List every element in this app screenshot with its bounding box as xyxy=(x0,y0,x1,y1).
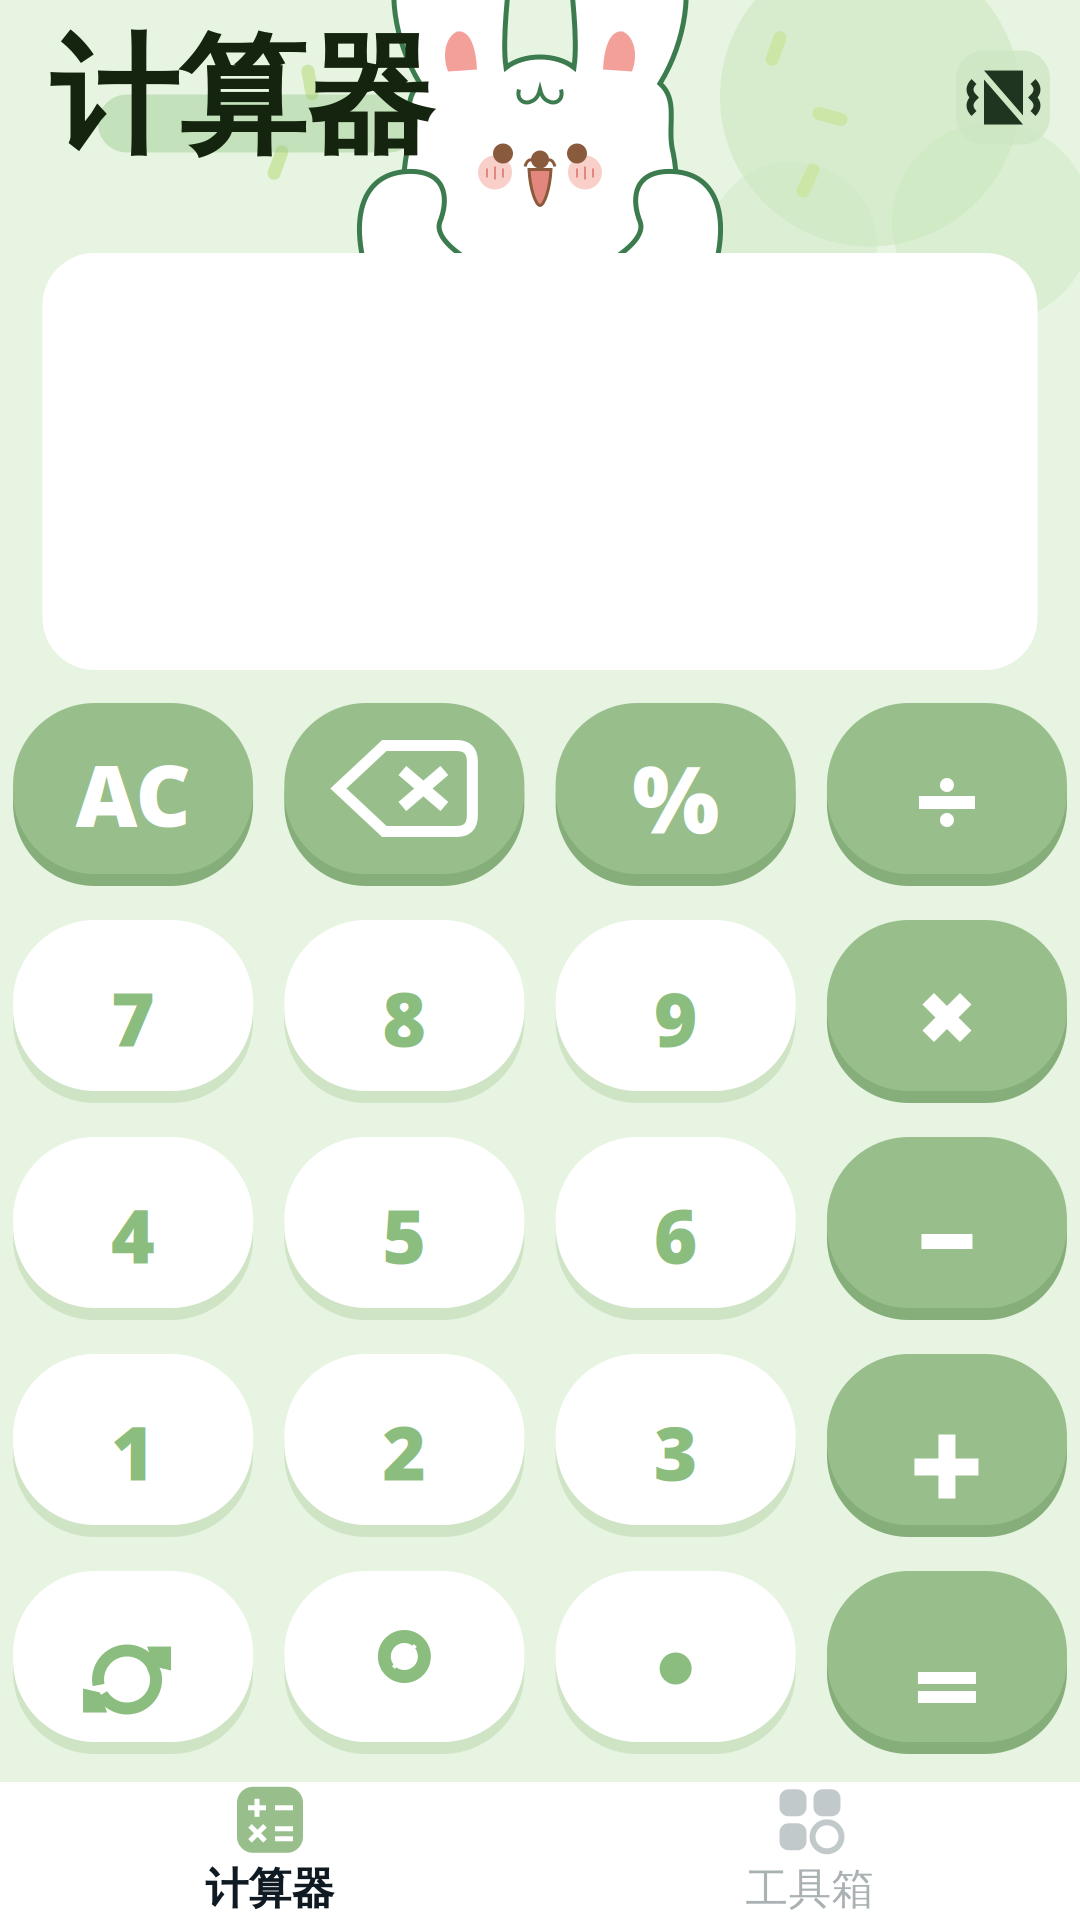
button[interactable]: Divide xyxy=(827,697,1067,880)
button[interactable]: Backspace xyxy=(284,697,524,880)
staticText: 计算器 xyxy=(205,1863,334,1915)
button[interactable]: 3 xyxy=(556,1348,796,1531)
button[interactable]: Decimal point xyxy=(556,1565,796,1748)
button[interactable]: Unit convert xyxy=(13,1565,253,1748)
button[interactable]: Zero xyxy=(284,1565,524,1748)
button[interactable]: Haptic feedback off xyxy=(956,50,1050,144)
button[interactable]: 9 xyxy=(556,914,796,1097)
button[interactable]: 5 xyxy=(284,1131,524,1314)
button[interactable]: Equals xyxy=(827,1565,1067,1748)
button[interactable]: 8 xyxy=(284,914,524,1097)
staticText: 计算器 xyxy=(50,19,434,176)
button[interactable]: 7 xyxy=(13,914,253,1097)
staticText: 7 xyxy=(111,968,155,1067)
staticText: 9 xyxy=(654,968,698,1067)
staticText: 5 xyxy=(382,1185,426,1284)
button[interactable]: 1 xyxy=(13,1348,253,1531)
staticText: % xyxy=(632,736,719,859)
button[interactable]: Plus xyxy=(827,1348,1067,1531)
button[interactable]: 工具箱 xyxy=(540,1775,1080,1920)
button[interactable]: 2 xyxy=(284,1348,524,1531)
staticText: 4 xyxy=(111,1185,155,1284)
staticText: 3 xyxy=(654,1402,698,1501)
button[interactable]: Minus xyxy=(827,1131,1067,1314)
staticText: 8 xyxy=(382,968,426,1067)
staticText: 6 xyxy=(654,1185,698,1284)
button[interactable]: 6 xyxy=(556,1131,796,1314)
button[interactable]: 4 xyxy=(13,1131,253,1314)
staticText: AC xyxy=(75,737,190,850)
staticText: 工具箱 xyxy=(745,1863,874,1915)
staticText: 1 xyxy=(111,1402,155,1501)
button[interactable]: 计算器 xyxy=(0,1775,540,1920)
button[interactable]: Multiply xyxy=(827,914,1067,1097)
button[interactable]: Percent xyxy=(556,697,796,880)
button[interactable]: All clear xyxy=(13,697,253,880)
staticText: 2 xyxy=(382,1402,426,1501)
